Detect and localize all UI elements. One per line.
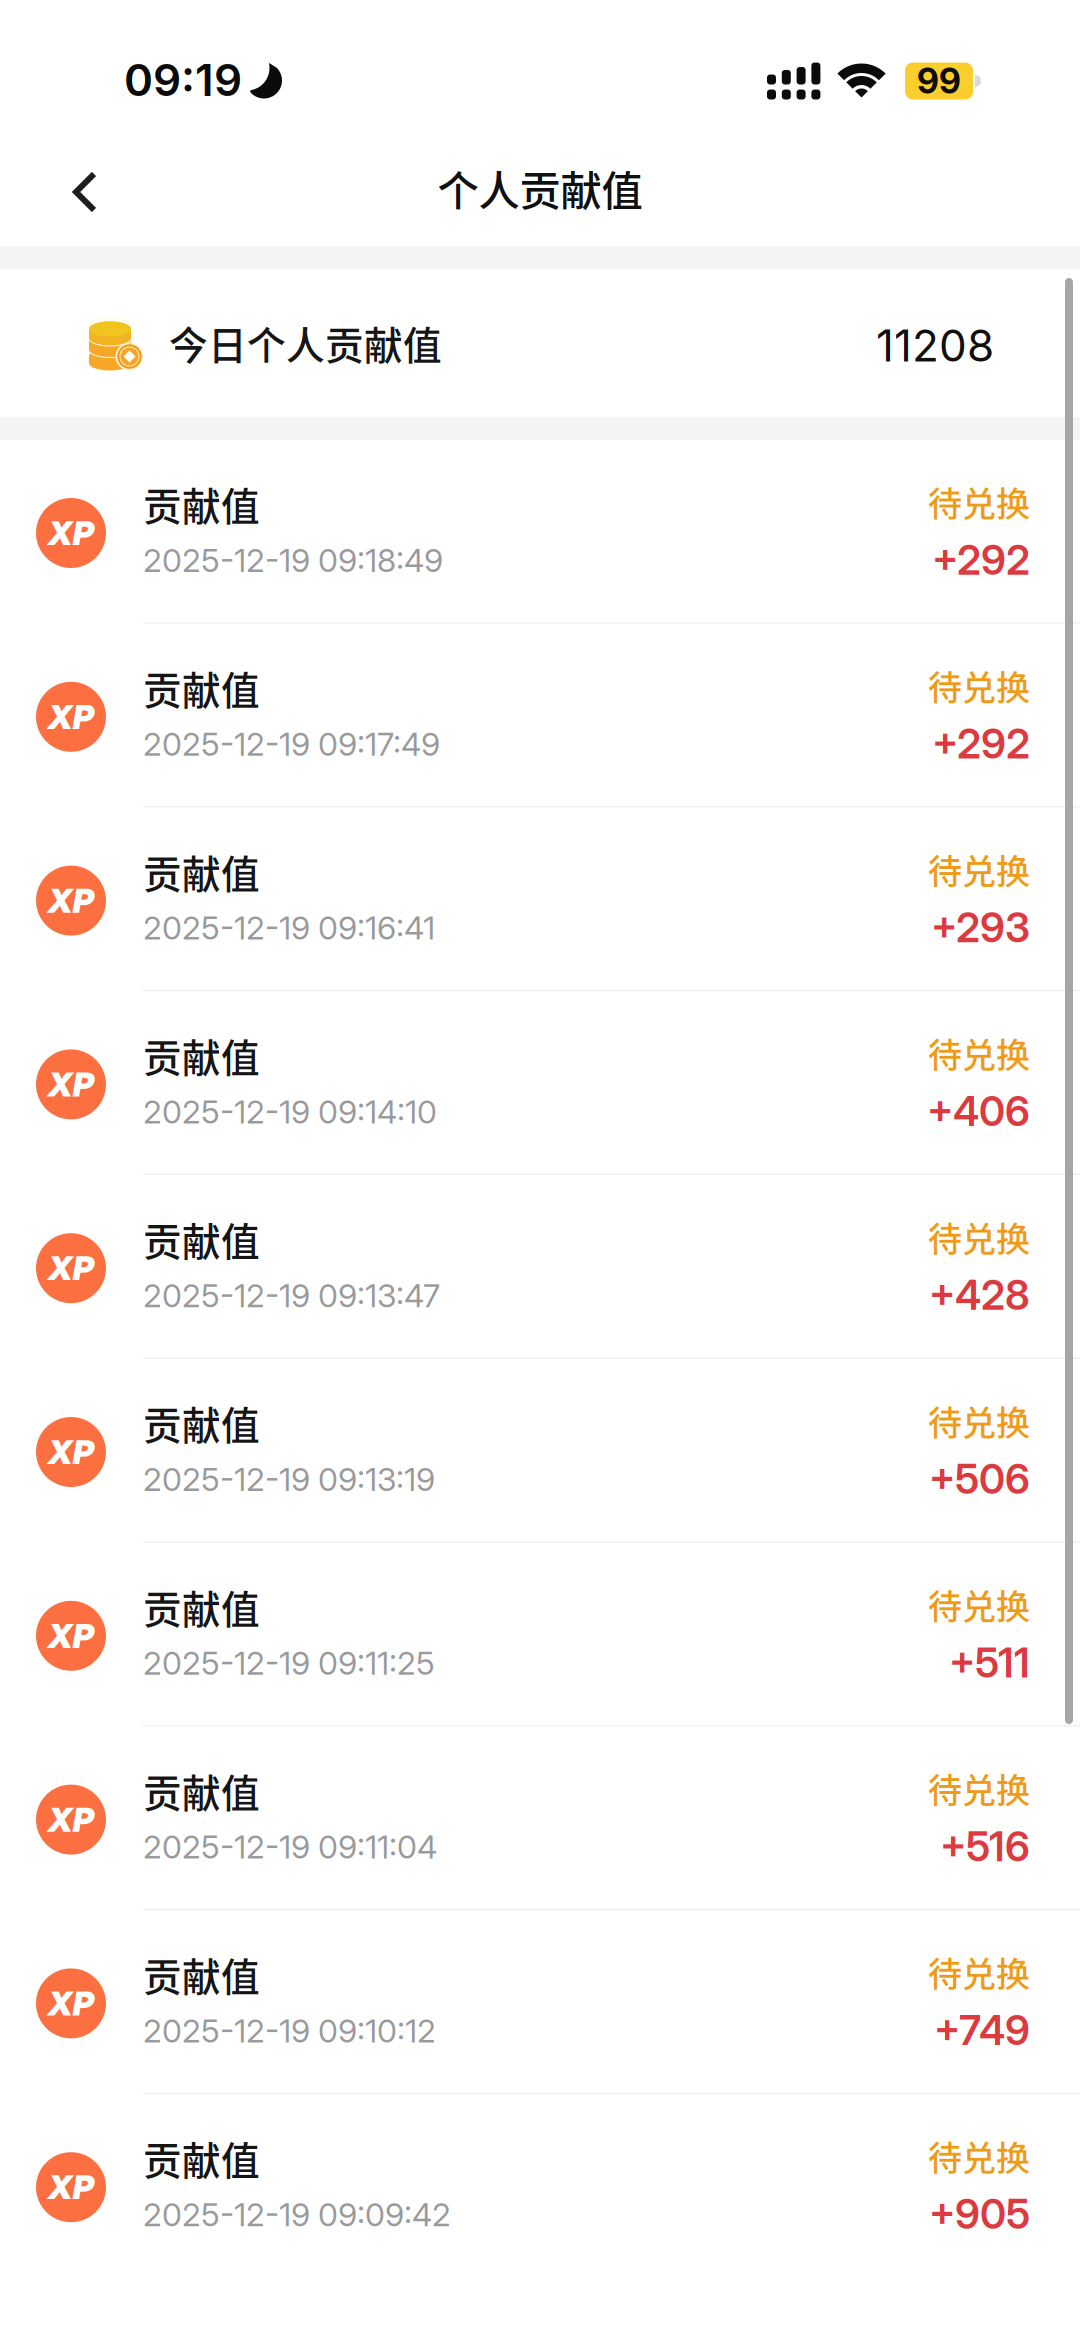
button[interactable]: Back bbox=[0, 130, 148, 246]
button[interactable]: XP bbox=[0, 808, 1080, 991]
staticText: 贡献值 bbox=[143, 844, 260, 900]
staticText: 99 bbox=[917, 60, 961, 102]
staticText: 贡献值 bbox=[143, 660, 260, 716]
staticText: +292 bbox=[932, 535, 1030, 584]
button[interactable]: XP bbox=[0, 2094, 1080, 2276]
staticText: XP bbox=[47, 1064, 94, 1104]
staticText: 2025-12-19 09:10:12 bbox=[143, 2011, 436, 2050]
staticText: 待兑换 bbox=[928, 1212, 1030, 1261]
staticText: +749 bbox=[934, 2006, 1030, 2055]
staticText: XP bbox=[47, 1799, 94, 1840]
staticText: +428 bbox=[929, 1270, 1030, 1320]
staticText: 贡献值 bbox=[143, 1763, 260, 1819]
staticText: +516 bbox=[940, 1822, 1030, 1871]
staticText: 待兑换 bbox=[928, 1396, 1030, 1445]
staticText: 待兑换 bbox=[928, 2131, 1030, 2180]
staticText: 贡献值 bbox=[143, 1395, 260, 1451]
staticText: 09:19 bbox=[124, 53, 242, 107]
staticText: 2025-12-19 09:17:49 bbox=[143, 725, 440, 763]
button[interactable]: XP bbox=[0, 1543, 1080, 1727]
staticText: 待兑换 bbox=[928, 661, 1030, 710]
staticText: 2025-12-19 09:11:25 bbox=[143, 1644, 435, 1682]
staticText: 贡献值 bbox=[143, 2130, 260, 2186]
staticText: 2025-12-19 09:09:42 bbox=[143, 2195, 451, 2234]
staticText: 贡献值 bbox=[143, 1027, 260, 1083]
staticText: 贡献值 bbox=[143, 1579, 260, 1635]
button[interactable]: XP bbox=[0, 1175, 1080, 1359]
staticText: 待兑换 bbox=[928, 1764, 1030, 1813]
staticText: XP bbox=[47, 2167, 94, 2207]
staticText: 2025-12-19 09:13:19 bbox=[143, 1460, 435, 1499]
staticText: 待兑换 bbox=[928, 1947, 1030, 1997]
staticText: XP bbox=[47, 513, 94, 553]
button[interactable]: XP bbox=[0, 1727, 1080, 1910]
button[interactable]: 今日个人贡献值 bbox=[0, 269, 1080, 417]
staticText: 2025-12-19 09:13:47 bbox=[143, 1276, 440, 1315]
staticText: 贡献值 bbox=[143, 476, 260, 532]
button[interactable]: XP bbox=[0, 1910, 1080, 2094]
staticText: +511 bbox=[949, 1638, 1030, 1687]
button[interactable]: XP bbox=[0, 991, 1080, 1175]
staticText: 待兑换 bbox=[928, 477, 1030, 526]
staticText: +406 bbox=[927, 1087, 1030, 1136]
staticText: 2025-12-19 09:16:41 bbox=[143, 909, 435, 947]
staticText: 2025-12-19 09:14:10 bbox=[143, 1092, 437, 1131]
staticText: XP bbox=[47, 1432, 94, 1472]
button[interactable]: XP bbox=[0, 1359, 1080, 1543]
staticText: XP bbox=[47, 1616, 94, 1656]
staticText: 待兑换 bbox=[928, 1028, 1030, 1078]
staticText: 待兑换 bbox=[928, 1580, 1030, 1629]
button[interactable]: XP bbox=[0, 440, 1080, 624]
staticText: 11208 bbox=[876, 319, 994, 372]
staticText: 贡献值 bbox=[143, 1946, 260, 2002]
staticText: XP bbox=[47, 697, 94, 737]
staticText: 2025-12-19 09:11:04 bbox=[143, 1828, 437, 1866]
staticText: +506 bbox=[929, 1454, 1030, 1503]
staticText: 贡献值 bbox=[143, 1211, 260, 1267]
staticText: XP bbox=[47, 1983, 94, 2023]
staticText: 今日个人贡献值 bbox=[169, 315, 442, 371]
button[interactable]: XP bbox=[0, 624, 1080, 808]
staticText: XP bbox=[47, 880, 94, 921]
staticText: 待兑换 bbox=[928, 845, 1030, 894]
staticText: +293 bbox=[931, 903, 1030, 952]
staticText: 个人贡献值 bbox=[437, 158, 642, 218]
staticText: +292 bbox=[932, 719, 1030, 768]
staticText: 2025-12-19 09:18:49 bbox=[143, 541, 443, 580]
staticText: +905 bbox=[929, 2189, 1030, 2239]
staticText: XP bbox=[47, 1248, 94, 1288]
